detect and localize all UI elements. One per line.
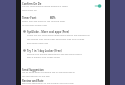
staticText: Confirm On De [22,2,42,6]
staticText: with a pattern lock screen today [27,56,94,59]
staticText: Timer Font [22,16,37,20]
button[interactable]: Review and Rate [21,78,105,85]
staticText: and enjoy them now [27,42,94,45]
staticText: Select font size used for the running ti… [22,20,68,26]
staticText: Ask for confirmation before deleting a s… [22,5,68,11]
staticText: Secure your private applications and per… [27,53,94,56]
staticText: Check out our other great applications w… [27,34,94,37]
button[interactable]: SysGlobe - More cool apps (Free) [21,29,105,48]
button[interactable]: Try 1 in 1 day Locker (Free) [21,48,105,67]
staticText: the Google Play store today absolutely f… [27,38,94,41]
staticText: Review and Rate [22,79,44,83]
staticText: Try 1 in 1 day Locker (Free) [27,49,62,53]
button[interactable]: Send Suggestion [21,67,105,78]
staticText: 80% [50,16,56,20]
staticText: Rate this application on the Google Play… [22,82,92,85]
staticText: Let us know what you would like to see i… [22,71,92,74]
staticText: SysGlobe - More cool apps (Free) [27,30,70,34]
button[interactable]: Confirm On De [21,0,105,13]
staticText: the next version of the app [22,75,92,78]
staticText: Send Suggestion [22,68,44,72]
button[interactable]: Timer Font [21,14,105,28]
button[interactable]: Confirm on delete switch [92,2,104,10]
